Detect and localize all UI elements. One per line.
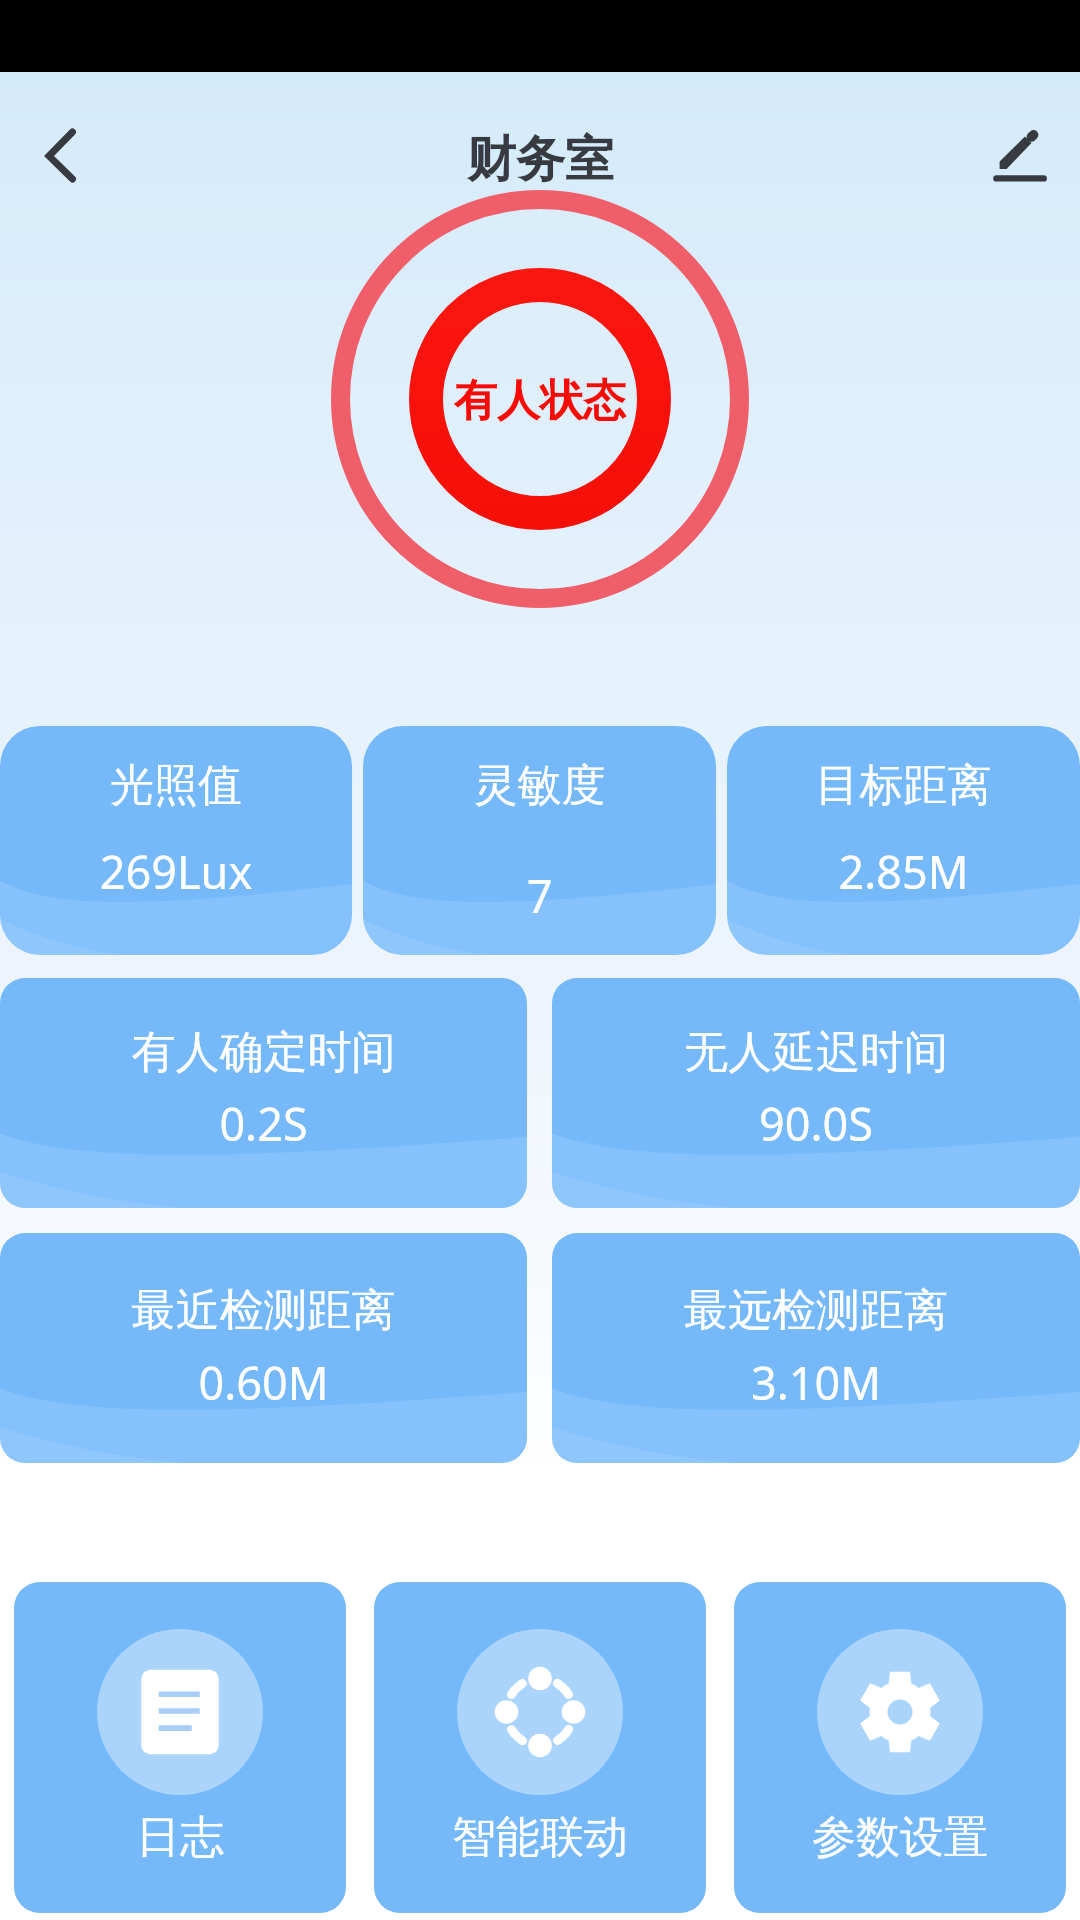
button[interactable]: 无人延迟时间 (552, 978, 1080, 1208)
button[interactable]: 灵敏度 (363, 726, 716, 955)
button[interactable]: 最近检测距离 (0, 1233, 527, 1463)
staticText: 日志 (14, 1810, 346, 1865)
button[interactable]: Back (14, 114, 98, 198)
staticText: 3.10M (552, 1352, 1080, 1413)
staticText: 无人延迟时间 (552, 1025, 1080, 1080)
button[interactable]: Settings (734, 1582, 1066, 1913)
button[interactable]: 最远检测距离 (552, 1233, 1080, 1463)
button[interactable]: 目标距离 (727, 726, 1080, 955)
staticText: 最远检测距离 (552, 1283, 1080, 1338)
button[interactable]: 光照值 (0, 726, 352, 955)
staticText: 智能联动 (374, 1810, 706, 1865)
staticText: 有人确定时间 (0, 1025, 527, 1080)
button[interactable]: Presence status (311, 170, 769, 628)
staticText: 财务室 (467, 129, 614, 191)
staticText: 光照值 (0, 758, 352, 813)
button[interactable]: Logs (14, 1582, 346, 1913)
staticText: 2.85M (727, 841, 1080, 902)
staticText: 7 (363, 865, 716, 926)
staticText: 269Lux (0, 841, 352, 902)
staticText: 0.60M (0, 1352, 527, 1413)
staticText: 最近检测距离 (0, 1283, 527, 1338)
button[interactable]: Edit (990, 114, 1074, 198)
button[interactable]: 有人确定时间 (0, 978, 527, 1208)
staticText: 90.0S (552, 1093, 1080, 1154)
staticText: 目标距离 (727, 758, 1080, 813)
staticText: 灵敏度 (363, 758, 716, 813)
staticText: 有人状态 (454, 374, 626, 428)
button[interactable]: Automation (374, 1582, 706, 1913)
staticText: 0.2S (0, 1093, 527, 1154)
staticText: 参数设置 (734, 1810, 1066, 1865)
